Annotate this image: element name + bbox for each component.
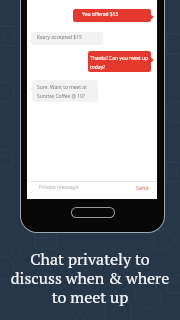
staticText: You offered $15 <box>82 11 119 18</box>
staticText: Sure. Want to meet at Sunrise Coffee @ 1… <box>37 84 87 99</box>
button[interactable]: Send <box>136 184 149 191</box>
button[interactable]: Thanks! Can you meet up today? <box>88 51 151 72</box>
staticText: Keary accepted $15 <box>37 34 82 41</box>
staticText: Chat privately to discuss when & where t… <box>0 248 180 307</box>
button[interactable]: Private message <box>27 181 157 199</box>
button[interactable]: Keary accepted $15 <box>31 32 103 45</box>
staticText: Thanks! Can you meet up today? <box>90 55 149 70</box>
button[interactable]: Sure. Want to meet at Sunrise Coffee @ 1… <box>32 80 98 102</box>
button[interactable]: You offered $15 <box>73 9 151 22</box>
staticText: Send <box>136 184 149 191</box>
staticText: Private message <box>39 184 79 191</box>
